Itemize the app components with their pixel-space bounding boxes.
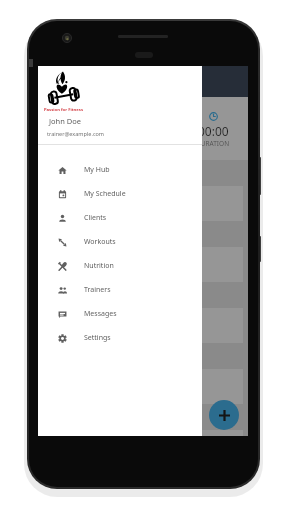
button[interactable] — [43, 186, 243, 221]
staticText: CALORIES — [128, 139, 159, 148]
staticText: Settings — [84, 333, 111, 343]
button[interactable]: Nutrition — [38, 254, 202, 278]
button[interactable]: Settings — [38, 326, 202, 350]
staticText: Nutrition — [84, 261, 114, 271]
staticText: Workouts — [84, 237, 116, 247]
staticText: My Hub — [84, 165, 110, 175]
staticText: DURATION — [196, 139, 230, 148]
button[interactable]: Trainers — [38, 278, 202, 302]
staticText: trainer@example.com — [47, 130, 104, 137]
button[interactable] — [43, 308, 243, 343]
button[interactable]: Workouts — [38, 230, 202, 254]
button[interactable]: Clients — [38, 206, 202, 230]
button[interactable]: My Schedule — [38, 182, 202, 206]
button[interactable]: Add — [209, 400, 239, 430]
button[interactable]: My Hub — [38, 158, 202, 182]
staticText: Trainers — [84, 285, 111, 295]
staticText: Passion for Fitness — [44, 107, 83, 113]
staticText: Messages — [84, 309, 117, 319]
staticText: My Schedule — [84, 189, 126, 199]
button[interactable] — [43, 369, 243, 404]
button[interactable] — [43, 247, 243, 282]
button[interactable]: Messages — [38, 302, 202, 326]
staticText: Clients — [84, 213, 107, 223]
staticText: DURATION — [56, 139, 90, 148]
staticText: 00:00 — [58, 123, 89, 139]
staticText: John Doe — [49, 116, 82, 126]
button[interactable] — [43, 430, 243, 436]
staticText: 00:00 — [198, 123, 229, 139]
